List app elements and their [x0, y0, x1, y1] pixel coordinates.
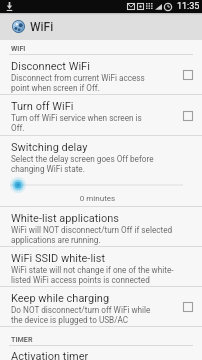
staticText: Switching delay [11, 141, 88, 154]
staticText: Disconnect from current WiFi access poin… [11, 73, 145, 93]
staticText: Activation timer [11, 350, 89, 360]
staticText: Turn off WiFi [11, 100, 74, 113]
button[interactable]: White-list applications [0, 207, 202, 247]
staticText: Keep while charging [11, 292, 110, 305]
staticText: WIFI [11, 44, 26, 52]
staticText: Select the delay screen goes Off before … [11, 154, 154, 174]
button[interactable]: Disconnect WiFi [0, 55, 202, 95]
button[interactable]: Turn off WiFi [0, 95, 202, 136]
staticText: WiFi state will not change if one of the… [11, 265, 174, 285]
staticText: 11:35 [177, 1, 200, 12]
staticText: Disconnect WiFi [11, 60, 90, 73]
staticText: Do NOT disconnect/turn off WiFi while th… [11, 305, 151, 325]
staticText: WiFi [30, 20, 54, 34]
button[interactable]: Switching delay [0, 136, 202, 207]
staticText: 0 minutes [0, 194, 195, 203]
staticText: WiFi will NOT disconnect/turn Off if sel… [11, 225, 173, 245]
staticText: TIMER [11, 335, 33, 343]
staticText: White-list applications [11, 212, 120, 225]
staticText: Turn off WiFi service when screen is Off… [11, 113, 142, 133]
button[interactable]: Activation timer [0, 346, 202, 360]
button[interactable]: Keep while charging [0, 287, 202, 327]
staticText: WiFi SSID white-list [11, 252, 106, 265]
button[interactable]: WiFi SSID white-list [0, 247, 202, 287]
